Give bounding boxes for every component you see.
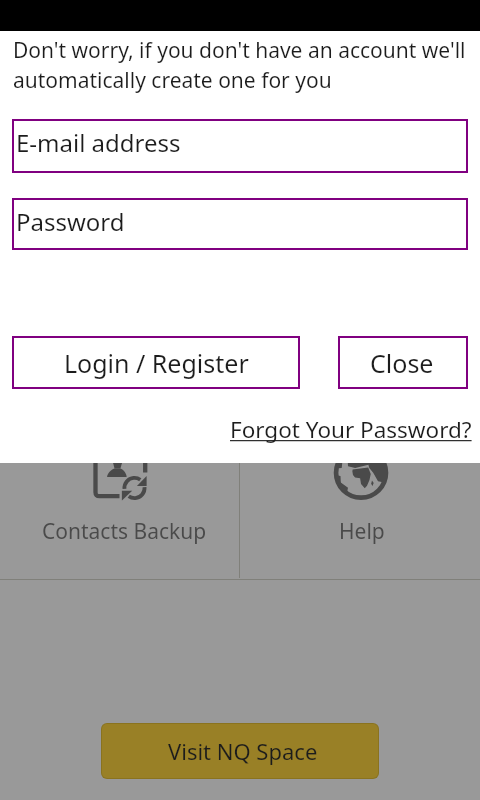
button[interactable]: Visit NQ Space	[102, 724, 378, 778]
staticText: E-mail address	[16, 126, 181, 159]
staticText: Help	[339, 517, 385, 546]
staticText: Close	[370, 346, 434, 380]
staticText: Password	[16, 205, 125, 238]
staticText: Login / Register	[64, 346, 249, 380]
other: Help	[330, 444, 390, 504]
button[interactable]: E-mail address	[12, 119, 468, 173]
button[interactable]: Help	[239, 440, 480, 578]
button[interactable]: Login / Register	[12, 336, 300, 389]
button[interactable]: Contacts Backup	[0, 440, 239, 578]
staticText: Contacts Backup	[42, 517, 207, 546]
staticText: Forgot Your Password?	[230, 414, 472, 445]
staticText: Don't worry, if you don't have an accoun…	[13, 36, 473, 94]
staticText: Visit NQ Space	[168, 736, 318, 766]
other: Contacts Backup	[92, 448, 148, 504]
button[interactable]: Forgot Your Password?	[218, 408, 468, 442]
button[interactable]: Close	[338, 336, 468, 389]
button[interactable]: Password	[12, 198, 468, 250]
